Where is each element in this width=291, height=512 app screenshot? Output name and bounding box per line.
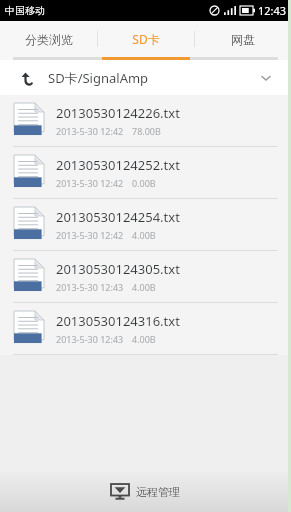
button[interactable]: 20130530124252.txt bbox=[0, 147, 291, 198]
staticText: 2013-5-30 12:42 bbox=[56, 229, 124, 241]
staticText: 20130530124254.txt bbox=[56, 208, 180, 226]
staticText: 分类浏览 bbox=[25, 32, 73, 47]
button[interactable]: SD卡 bbox=[98, 21, 194, 57]
staticText: 20130530124316.txt bbox=[56, 312, 180, 330]
button[interactable]: Up one level bbox=[18, 68, 38, 88]
button[interactable]: 20130530124254.txt bbox=[0, 199, 291, 250]
staticText: 2013-5-30 12:42 bbox=[56, 125, 124, 137]
button[interactable]: 远程管理 bbox=[111, 472, 180, 512]
staticText: 4.00B bbox=[132, 333, 156, 345]
staticText: 20130530124252.txt bbox=[56, 156, 180, 174]
staticText: 2013-5-30 12:43 bbox=[56, 281, 124, 293]
staticText: 远程管理 bbox=[136, 485, 180, 499]
staticText: 2013-5-30 12:42 bbox=[56, 177, 124, 189]
staticText: 4.00B bbox=[132, 229, 156, 241]
staticText: 20130530124226.txt bbox=[56, 104, 180, 122]
staticText: 2013-5-30 12:43 bbox=[56, 333, 124, 345]
button[interactable]: 20130530124226.txt bbox=[0, 95, 291, 146]
button[interactable]: 分类浏览 bbox=[0, 21, 97, 57]
staticText: 78.00B bbox=[132, 125, 161, 137]
button[interactable]: Up one level bbox=[0, 60, 291, 95]
staticText: 12:43 bbox=[258, 3, 287, 18]
staticText: 4.00B bbox=[132, 281, 156, 293]
staticText: SD卡/SignalAmp bbox=[48, 69, 257, 87]
staticText: SD卡 bbox=[132, 31, 160, 47]
button[interactable]: Expand path bbox=[257, 69, 275, 87]
staticText: 20130530124305.txt bbox=[56, 260, 180, 278]
button[interactable]: 20130530124305.txt bbox=[0, 251, 291, 302]
staticText: 网盘 bbox=[231, 32, 255, 47]
staticText: 0.00B bbox=[132, 177, 156, 189]
staticText: 中国移动 bbox=[5, 4, 45, 17]
button[interactable]: 网盘 bbox=[195, 21, 291, 57]
button[interactable]: 20130530124316.txt bbox=[0, 303, 291, 354]
